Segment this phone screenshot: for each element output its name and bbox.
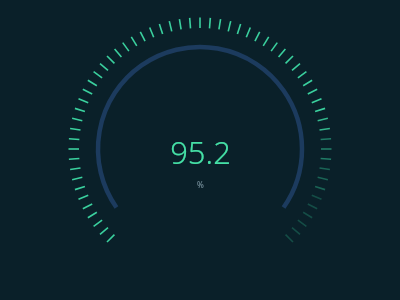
- button[interactable]: Gauge showing 95.2 percent: [0, 0, 400, 300]
- other: Gauge showing 95.2 percent: [0, 0, 400, 300]
- staticText: 95.2: [170, 131, 231, 173]
- staticText: %: [197, 179, 204, 190]
